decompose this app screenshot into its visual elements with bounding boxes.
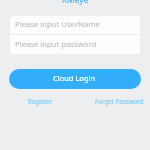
button[interactable]: Cloud Login: [9, 69, 141, 89]
button[interactable]: Please input UserName: [10, 16, 140, 34]
button[interactable]: Register: [25, 96, 55, 106]
staticText: Please input password: [15, 39, 97, 49]
staticText: Cloud Login: [53, 73, 96, 83]
staticText: XMeye: [62, 0, 89, 6]
staticText: Please input UserName: [15, 19, 100, 29]
staticText: Forget Password: [95, 97, 144, 105]
button[interactable]: Forget Password: [92, 96, 147, 106]
button[interactable]: Please input password: [10, 35, 140, 54]
staticText: Register: [28, 97, 52, 105]
